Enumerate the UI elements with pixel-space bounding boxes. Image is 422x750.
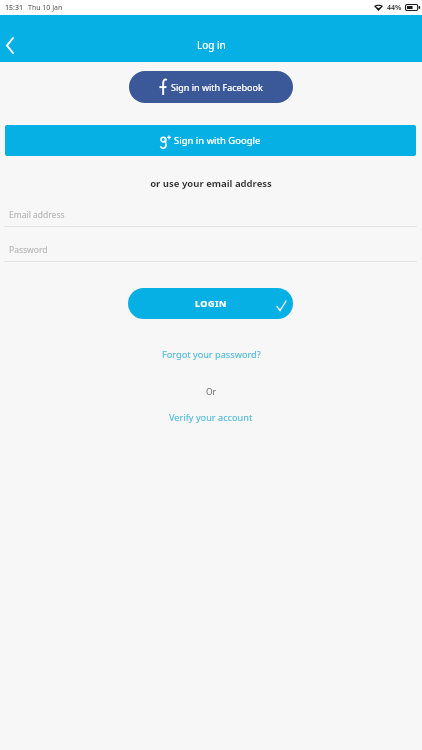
staticText: Email address: [9, 209, 65, 221]
staticText: Or: [0, 386, 422, 398]
staticText: Sign in with Facebook: [171, 81, 263, 93]
staticText: Forgot your password?: [162, 348, 261, 361]
staticText: Log in: [197, 38, 226, 52]
button[interactable]: LOGIN: [128, 288, 293, 319]
staticText: LOGIN: [195, 297, 227, 309]
staticText: 44%: [387, 3, 402, 13]
staticText: 15:31: [5, 3, 23, 13]
staticText: Thu 10 Jan: [28, 3, 63, 13]
button[interactable]: Back: [0, 15, 26, 62]
button[interactable]: Forgot your password?: [156, 346, 267, 363]
staticText: Verify your account: [169, 411, 253, 424]
button[interactable]: Verify your account: [163, 409, 259, 426]
button[interactable]: Sign in with Google: [5, 125, 416, 156]
staticText: Password: [9, 244, 48, 256]
button[interactable]: Sign in with Facebook: [129, 71, 293, 103]
staticText: or use your email address: [0, 177, 422, 190]
staticText: Sign in with Google: [174, 134, 261, 147]
